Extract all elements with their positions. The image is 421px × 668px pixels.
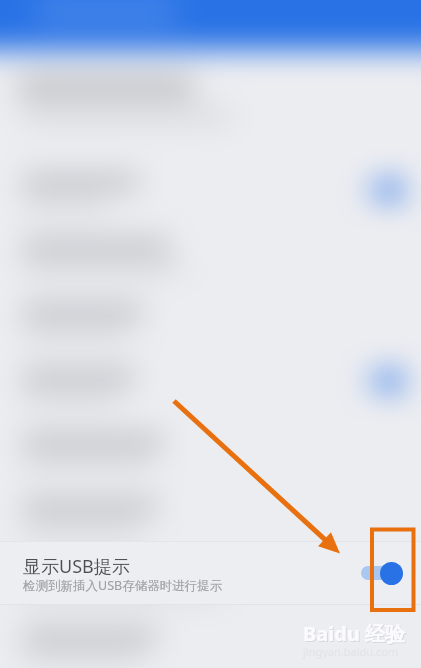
staticText: jingyan.baidu.com bbox=[303, 644, 399, 659]
staticText: Baidu 经验 bbox=[304, 621, 407, 648]
button[interactable]: 显示USB提示 bbox=[0, 541, 421, 605]
staticText: 检测到新插入USB存储器时进行提示 bbox=[23, 577, 223, 594]
button[interactable]: Show USB prompt toggle bbox=[361, 561, 403, 585]
staticText: Baidu 经验 bbox=[303, 620, 406, 647]
staticText: 显示USB提示 bbox=[23, 554, 130, 579]
